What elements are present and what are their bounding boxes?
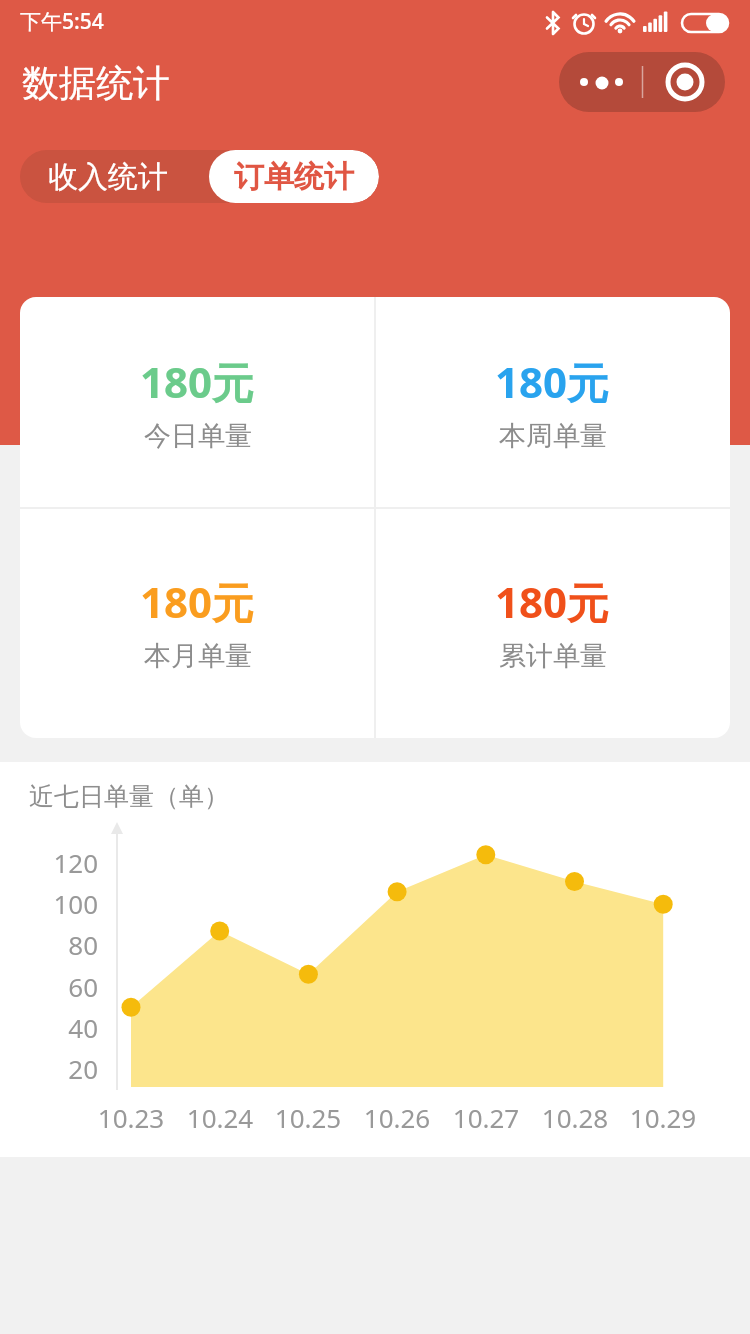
button[interactable]: 收入统计 xyxy=(20,150,209,203)
staticText: 收入统计 xyxy=(48,158,168,196)
staticText: 180元 xyxy=(140,573,255,630)
staticText: 120 xyxy=(40,845,98,880)
staticText: 10.25 xyxy=(263,1100,353,1135)
button[interactable] xyxy=(643,52,725,112)
staticText: 10.23 xyxy=(86,1100,176,1135)
staticText: 10.29 xyxy=(618,1100,708,1135)
staticText: 100 xyxy=(40,886,98,921)
staticText: 10.24 xyxy=(175,1100,265,1135)
staticText: 180元 xyxy=(495,573,610,630)
staticText: 80 xyxy=(40,927,98,962)
staticText: 40 xyxy=(40,1010,98,1045)
staticText: 10.27 xyxy=(441,1100,531,1135)
button[interactable]: 180元 xyxy=(375,297,730,508)
staticText: 60 xyxy=(40,969,98,1004)
staticText: 订单统计 xyxy=(234,158,354,196)
staticText: 180元 xyxy=(140,353,255,410)
button[interactable]: 订单统计 xyxy=(209,150,379,203)
button[interactable]: 180元 xyxy=(375,508,730,738)
staticText: 10.28 xyxy=(530,1100,620,1135)
staticText: 本月单量 xyxy=(144,639,252,673)
button[interactable]: 180元 xyxy=(20,508,375,738)
staticText: 20 xyxy=(40,1051,98,1086)
staticText: 近七日单量（单） xyxy=(29,781,229,812)
staticText: 下午5:54 xyxy=(20,7,104,36)
staticText: 累计单量 xyxy=(499,639,607,673)
staticText: 10.26 xyxy=(352,1100,442,1135)
button[interactable] xyxy=(559,52,643,112)
button[interactable]: 180元 xyxy=(20,297,375,508)
staticText: 数据统计 xyxy=(22,60,170,107)
staticText: 今日单量 xyxy=(144,419,252,453)
staticText: 180元 xyxy=(495,353,610,410)
staticText: 本周单量 xyxy=(499,419,607,453)
